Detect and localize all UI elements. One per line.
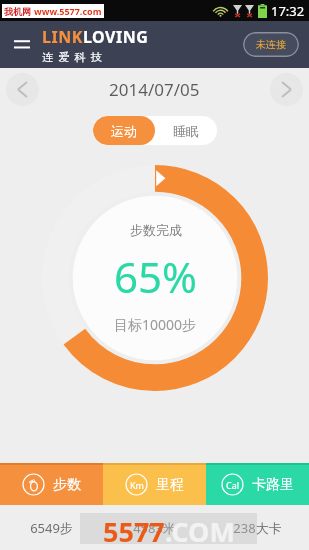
button[interactable]: Next day bbox=[270, 73, 303, 106]
staticText: LINK bbox=[42, 26, 83, 48]
staticText: 6549步 bbox=[30, 519, 73, 537]
staticText: 我机网 bbox=[4, 6, 31, 17]
staticText: 238大卡 bbox=[233, 519, 282, 537]
staticText: 步数完成 bbox=[130, 222, 182, 238]
staticText: 卡路里 bbox=[252, 476, 294, 494]
staticText: 睡眠 bbox=[173, 123, 199, 139]
button[interactable]: 未连接 bbox=[243, 32, 299, 57]
button[interactable]: 步数 bbox=[0, 463, 103, 505]
button[interactable]: Cal bbox=[206, 463, 309, 505]
staticText: LOVING bbox=[83, 26, 149, 48]
button[interactable]: 运动 bbox=[93, 116, 155, 145]
button[interactable]: Km bbox=[103, 463, 206, 505]
button[interactable]: Previous day bbox=[6, 73, 39, 106]
staticText: 目标10000步 bbox=[114, 315, 197, 334]
staticText: 步数 bbox=[53, 476, 81, 494]
button[interactable]: Menu bbox=[11, 34, 33, 56]
staticText: Km bbox=[130, 479, 144, 491]
staticText: 运动 bbox=[111, 123, 137, 139]
staticText: Cal bbox=[226, 479, 240, 491]
button[interactable]: 睡眠 bbox=[155, 116, 217, 145]
staticText: 5577 bbox=[103, 513, 165, 544]
staticText: 未连接 bbox=[256, 38, 286, 51]
staticText: 连 爱 科 技 bbox=[42, 49, 103, 64]
staticText: www.5577.com bbox=[34, 5, 102, 17]
staticText: 4583米 bbox=[133, 519, 176, 537]
staticText: .COM bbox=[165, 513, 235, 544]
button[interactable]: 步数完成 bbox=[42, 165, 268, 391]
staticText: 里程 bbox=[156, 476, 184, 494]
staticText: 65% bbox=[114, 248, 197, 305]
staticText: 17:32 bbox=[271, 2, 305, 20]
staticText: 2014/07/05 bbox=[109, 78, 200, 101]
